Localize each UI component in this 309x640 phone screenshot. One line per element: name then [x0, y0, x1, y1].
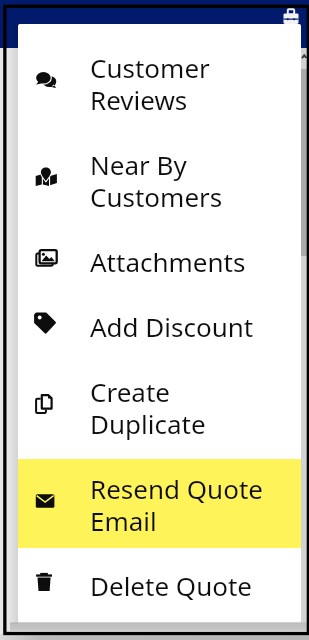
- button[interactable]: Create Duplicate: [18, 362, 301, 451]
- button[interactable]: Resend Quote Email: [18, 459, 301, 548]
- button[interactable]: Attachments: [18, 232, 301, 289]
- staticText: Customer Reviews: [90, 53, 210, 117]
- button[interactable]: Add Discount: [18, 297, 301, 354]
- staticText: Attachments: [90, 247, 246, 279]
- staticText: Resend Quote Email: [90, 474, 263, 538]
- button[interactable]: Near By Customers: [18, 135, 301, 224]
- staticText: Add Discount: [90, 312, 254, 344]
- staticText: Delete Quote: [90, 571, 252, 603]
- button[interactable]: Toolbox: [278, 3, 303, 28]
- button[interactable]: Delete Quote: [18, 556, 301, 613]
- button[interactable]: Customer Reviews: [18, 38, 301, 127]
- staticText: Create Duplicate: [90, 377, 206, 441]
- staticText: Near By Customers: [90, 150, 223, 214]
